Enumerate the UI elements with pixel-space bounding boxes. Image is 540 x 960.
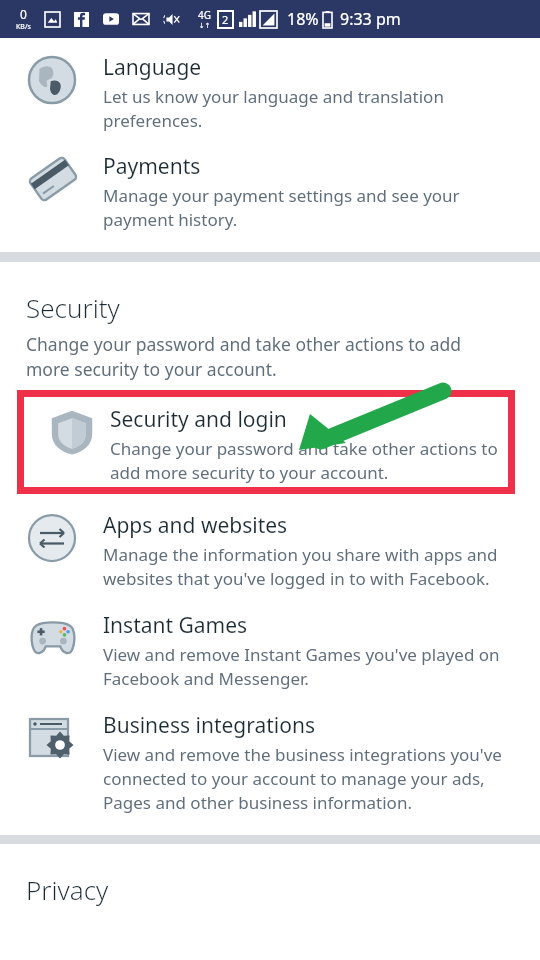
staticText: 18% bbox=[287, 8, 319, 30]
button[interactable]: Security and login bbox=[24, 397, 508, 487]
button[interactable]: Business integrations bbox=[0, 696, 540, 820]
staticText: 0 bbox=[20, 6, 27, 22]
staticText: Instant Games bbox=[103, 611, 248, 640]
staticText: 9:33 pm bbox=[340, 8, 401, 30]
staticText: 2 bbox=[222, 12, 229, 27]
staticText: Manage your payment settings and see you… bbox=[103, 184, 505, 231]
staticText: 4G bbox=[198, 8, 211, 22]
staticText: KB/s bbox=[16, 22, 31, 32]
button[interactable]: Payments bbox=[0, 138, 540, 237]
staticText: Privacy bbox=[26, 872, 109, 907]
staticText: Language bbox=[103, 53, 202, 82]
staticText: Manage the information you share with ap… bbox=[103, 543, 505, 590]
staticText: Change your password and take other acti… bbox=[26, 332, 500, 381]
staticText: Business integrations bbox=[103, 711, 316, 740]
staticText: Security bbox=[26, 290, 120, 325]
staticText: Payments bbox=[103, 152, 201, 181]
button[interactable]: Language bbox=[0, 38, 540, 138]
button[interactable]: Instant Games bbox=[0, 596, 540, 696]
button[interactable]: Apps and websites bbox=[0, 494, 540, 596]
staticText: View and remove the business integration… bbox=[103, 743, 505, 814]
staticText: Apps and websites bbox=[103, 511, 288, 540]
staticText: View and remove Instant Games you've pla… bbox=[103, 643, 505, 690]
staticText: Let us know your language and translatio… bbox=[103, 85, 505, 132]
staticText: ↓↑ bbox=[199, 22, 211, 30]
staticText: Change your password and take other acti… bbox=[110, 437, 508, 484]
staticText: Security and login bbox=[110, 405, 287, 434]
